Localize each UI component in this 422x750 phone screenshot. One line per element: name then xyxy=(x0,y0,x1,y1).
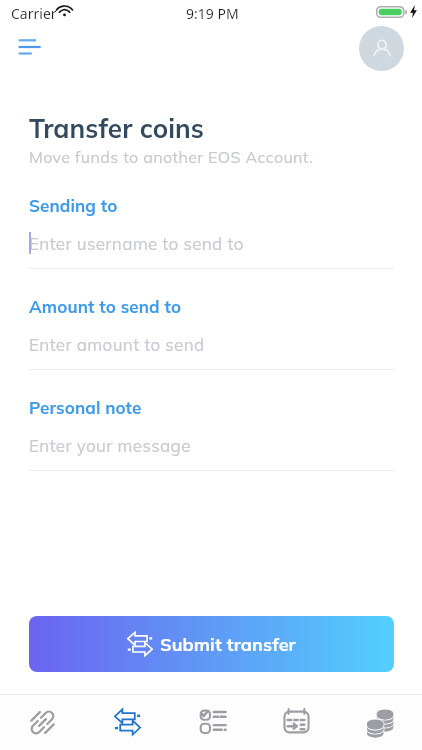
button[interactable]: Menu xyxy=(10,30,50,64)
staticText: Carrier xyxy=(11,4,57,23)
staticText: 9:19 PM xyxy=(186,4,239,23)
staticText: Sending to xyxy=(29,195,118,216)
button[interactable]: Submit transfer xyxy=(29,616,394,672)
staticText: Enter username to send to xyxy=(29,233,244,254)
staticText: Submit transfer xyxy=(160,633,296,656)
button[interactable]: Schedule xyxy=(254,694,338,750)
button[interactable]: Balance xyxy=(338,694,422,750)
button[interactable]: Transfer xyxy=(85,694,170,750)
staticText: Personal note xyxy=(29,397,142,418)
staticText: Move funds to another EOS Account. xyxy=(29,147,314,167)
button[interactable]: Tasks xyxy=(170,694,254,750)
staticText: Enter your message xyxy=(29,435,191,456)
button[interactable]: Links xyxy=(0,694,85,750)
staticText: Amount to send to xyxy=(29,296,182,317)
staticText: Enter amount to send xyxy=(29,334,205,355)
button[interactable]: Profile xyxy=(359,26,404,71)
staticText: Transfer coins xyxy=(29,112,204,145)
